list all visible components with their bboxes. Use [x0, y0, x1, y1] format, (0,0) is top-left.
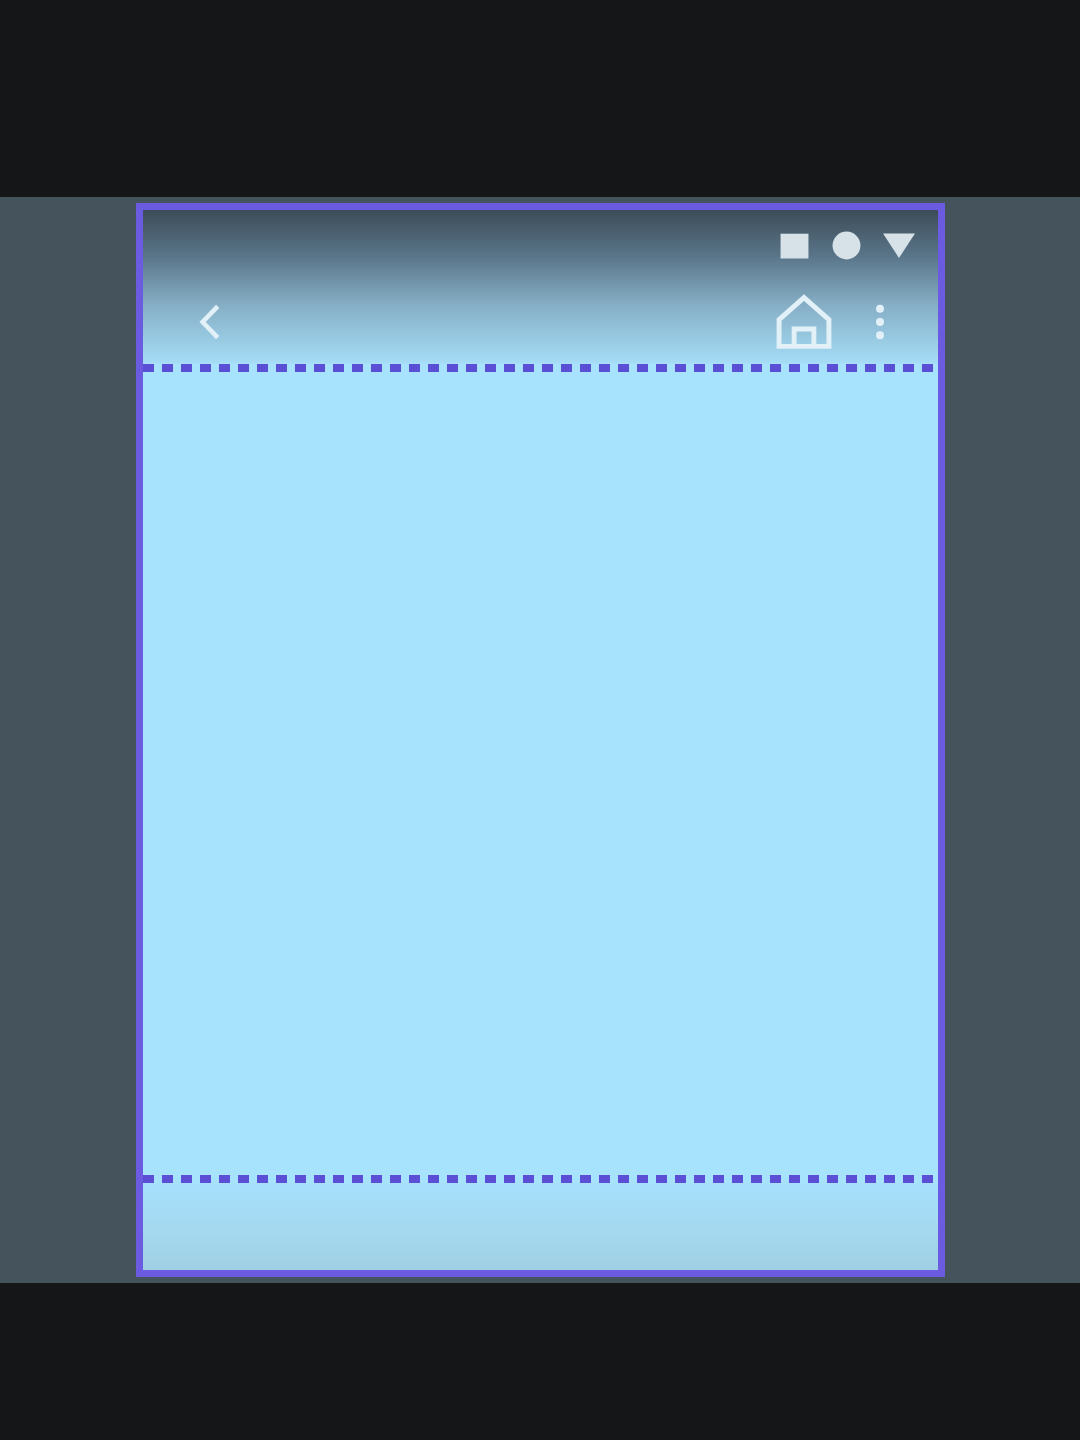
button[interactable]: More options [848, 290, 912, 354]
button[interactable]: Back [179, 290, 243, 354]
button[interactable]: Home [766, 284, 842, 360]
